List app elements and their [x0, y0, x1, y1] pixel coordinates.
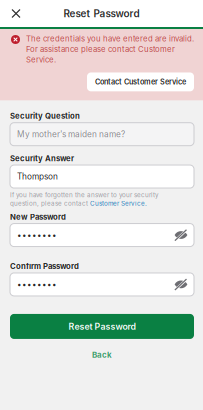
button[interactable]: Back [92, 345, 112, 365]
staticText: Back [92, 350, 112, 360]
staticText: Customer Service. [90, 200, 147, 207]
staticText: •••••••• [17, 280, 57, 289]
staticText: Reset Password [68, 321, 135, 332]
button[interactable]: Reset Password [10, 314, 194, 339]
staticText: Contact Customer Service [95, 77, 186, 86]
staticText: Confirm Password [10, 262, 79, 271]
staticText: Thompson [17, 172, 58, 182]
button[interactable]: Contact Customer Service [87, 72, 194, 91]
button[interactable]: Show new password [174, 229, 188, 241]
staticText: If you have forgotten the answer to your… [10, 191, 159, 199]
staticText: New Password [10, 212, 66, 222]
staticText: My mother's maiden name? [17, 129, 125, 139]
staticText: question, please contact [10, 200, 90, 207]
button[interactable]: Customer Service. [90, 200, 147, 207]
staticText: Security Question [10, 111, 80, 121]
button[interactable]: Show confirm password [174, 278, 188, 291]
staticText: Security Answer [10, 154, 74, 163]
staticText: •••••••• [17, 230, 57, 240]
staticText: The credentials you have entered are inv… [26, 34, 194, 64]
button[interactable]: Close [0, 0, 32, 27]
staticText: Reset Password [63, 7, 139, 20]
